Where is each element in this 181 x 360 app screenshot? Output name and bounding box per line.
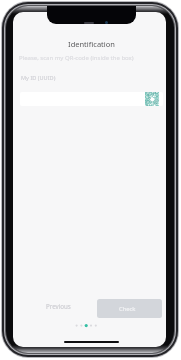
staticText: Check: [119, 305, 136, 313]
staticText: Identification: [15, 39, 166, 49]
button[interactable]: QR code of my ID: [20, 92, 163, 106]
button[interactable]: Previous: [41, 298, 75, 314]
staticText: Previous: [46, 302, 71, 310]
button[interactable]: Check: [97, 299, 162, 318]
other: QR code of my ID: [145, 92, 159, 106]
staticText: Please, scan my QR-code (inside the box): [19, 54, 134, 62]
staticText: My ID (UUID): [21, 74, 56, 82]
